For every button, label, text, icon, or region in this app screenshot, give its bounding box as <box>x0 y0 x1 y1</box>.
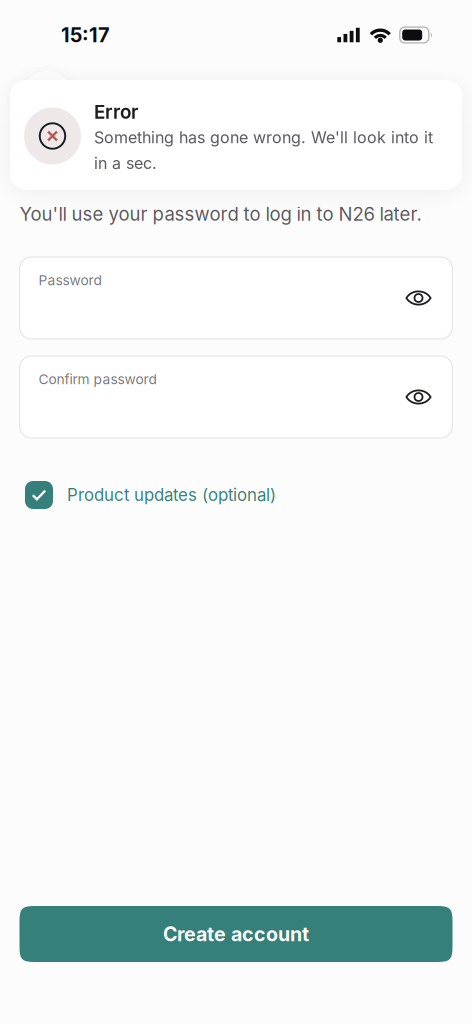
staticText: Product updates (optional) <box>67 485 276 505</box>
staticText: Error <box>94 100 138 123</box>
staticText: Confirm password <box>38 371 156 388</box>
staticText: 15:17 <box>61 23 110 47</box>
staticText: You'll use your password to log in to N2… <box>19 203 421 225</box>
button[interactable]: Create account <box>19 906 452 962</box>
staticText: Password <box>38 272 101 289</box>
button[interactable]: Product updates (optional) <box>25 479 315 511</box>
button[interactable]: Show Confirm password <box>396 375 440 419</box>
staticText: Create account <box>163 922 309 946</box>
button[interactable]: Show Password <box>396 276 440 320</box>
staticText: Something has gone wrong. We'll look int… <box>94 128 433 173</box>
